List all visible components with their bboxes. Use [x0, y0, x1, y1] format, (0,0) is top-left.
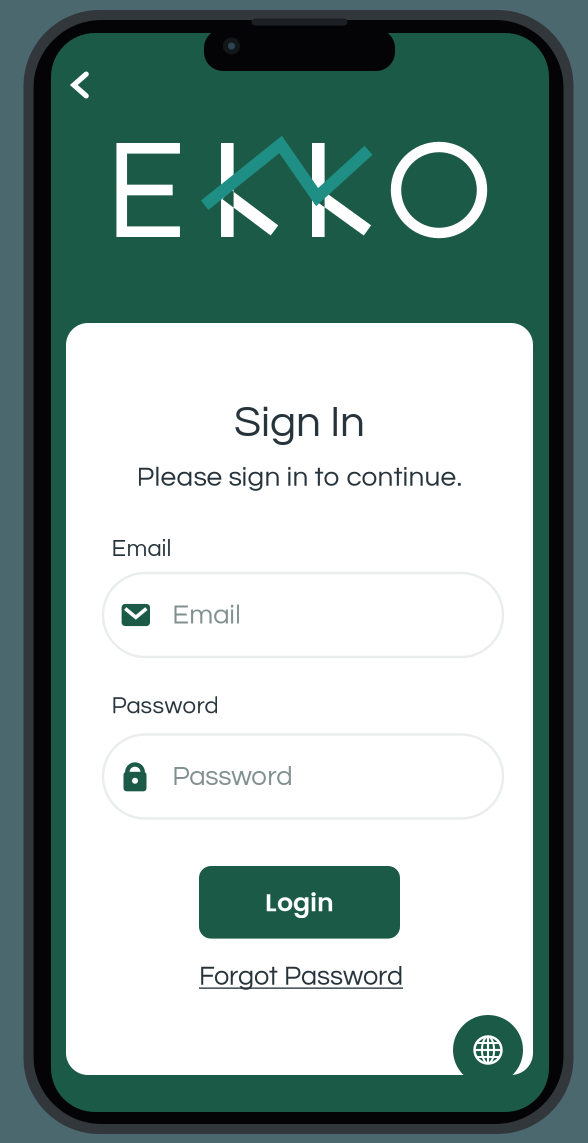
staticText: Please sign in to continue. [136, 463, 462, 492]
staticText: Email [172, 601, 241, 629]
button[interactable]: Password [103, 734, 503, 818]
button[interactable]: Login [199, 866, 400, 939]
button[interactable]: Email [103, 573, 503, 657]
button[interactable]: Language [453, 1015, 523, 1085]
staticText: Forgot Password [199, 963, 403, 990]
staticText: Email [111, 536, 171, 561]
staticText: Password [172, 762, 292, 791]
button[interactable]: Back [53, 58, 107, 112]
staticText: Sign In [234, 400, 365, 445]
staticText: Password [111, 694, 218, 718]
button[interactable]: Forgot Password [195, 957, 407, 996]
staticText: Login [265, 885, 334, 920]
